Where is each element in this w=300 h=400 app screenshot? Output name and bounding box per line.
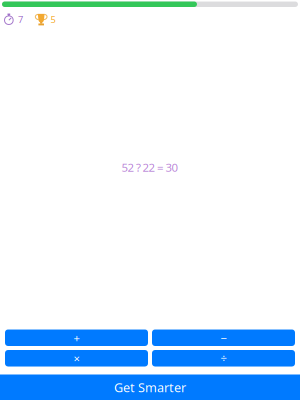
staticText: −	[220, 330, 226, 345]
staticText: 5	[50, 13, 55, 25]
staticText: +	[73, 330, 79, 345]
staticText: Get Smarter	[114, 379, 186, 396]
button[interactable]: Get Smarter	[0, 374, 300, 400]
button[interactable]: Multiply	[5, 350, 148, 366]
staticText: ×	[73, 351, 79, 366]
button[interactable]: Divide	[152, 350, 295, 366]
staticText: 7	[18, 13, 23, 25]
staticText: ÷	[220, 351, 226, 366]
button[interactable]: Plus	[5, 329, 148, 346]
staticText: 52 ? 22 = 30	[121, 160, 179, 175]
button[interactable]: Minus	[152, 329, 295, 346]
